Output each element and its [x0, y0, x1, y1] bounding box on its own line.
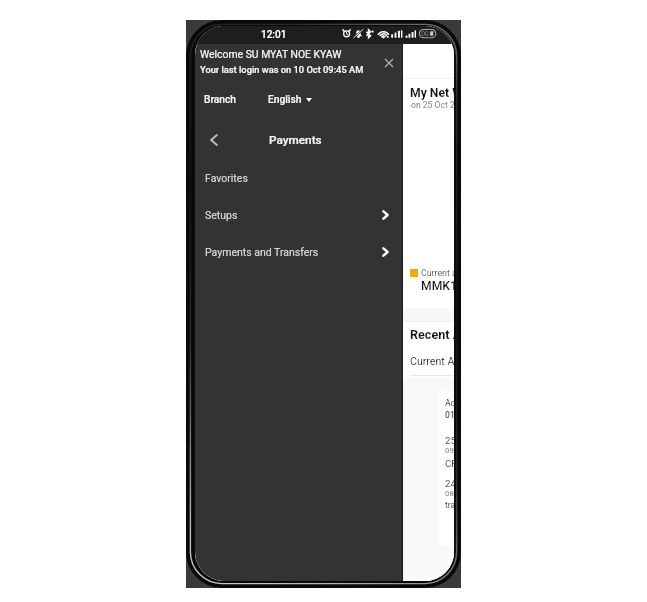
staticText: Current Account — [410, 355, 454, 367]
staticText: Setups — [205, 209, 238, 221]
staticText: CR — [445, 458, 454, 469]
button[interactable]: Setups — [195, 194, 403, 231]
staticText: English — [268, 94, 302, 106]
staticText: Payments — [269, 133, 322, 147]
staticText: MMK1,000,000.00 — [421, 279, 454, 293]
staticText: 25 Oct — [445, 435, 454, 446]
staticText: Account — [445, 398, 454, 408]
button[interactable]: Favorites — [195, 157, 403, 194]
staticText: 12:01 — [261, 29, 287, 41]
staticText: My Net Worth — [410, 86, 454, 100]
staticText: Welcome SU MYAT NOE KYAW — [200, 48, 342, 60]
staticText: Current account — [421, 268, 454, 278]
button[interactable]: Branch — [198, 89, 242, 111]
button[interactable]: English — [262, 89, 318, 111]
staticText: 0123456789 — [445, 410, 454, 420]
button[interactable]: Close — [378, 52, 399, 73]
staticText: Payments and Transfers — [205, 246, 319, 258]
staticText: Recent Activities — [410, 327, 454, 342]
button[interactable]: Back — [202, 128, 226, 152]
staticText: transfer — [445, 500, 454, 510]
staticText: Your last login was on 10 Oct 09:45 AM — [200, 64, 364, 75]
button[interactable]: Payments and Transfers — [195, 231, 403, 268]
button[interactable] — [195, 44, 403, 80]
staticText: Branch — [204, 94, 236, 106]
staticText: 09:45 AM — [445, 446, 454, 455]
staticText: 24 Oct — [445, 478, 454, 489]
staticText: on 25 Oct 2023 — [411, 100, 454, 110]
staticText: 08:12 AM — [445, 489, 454, 498]
staticText: Favorites — [205, 172, 248, 184]
